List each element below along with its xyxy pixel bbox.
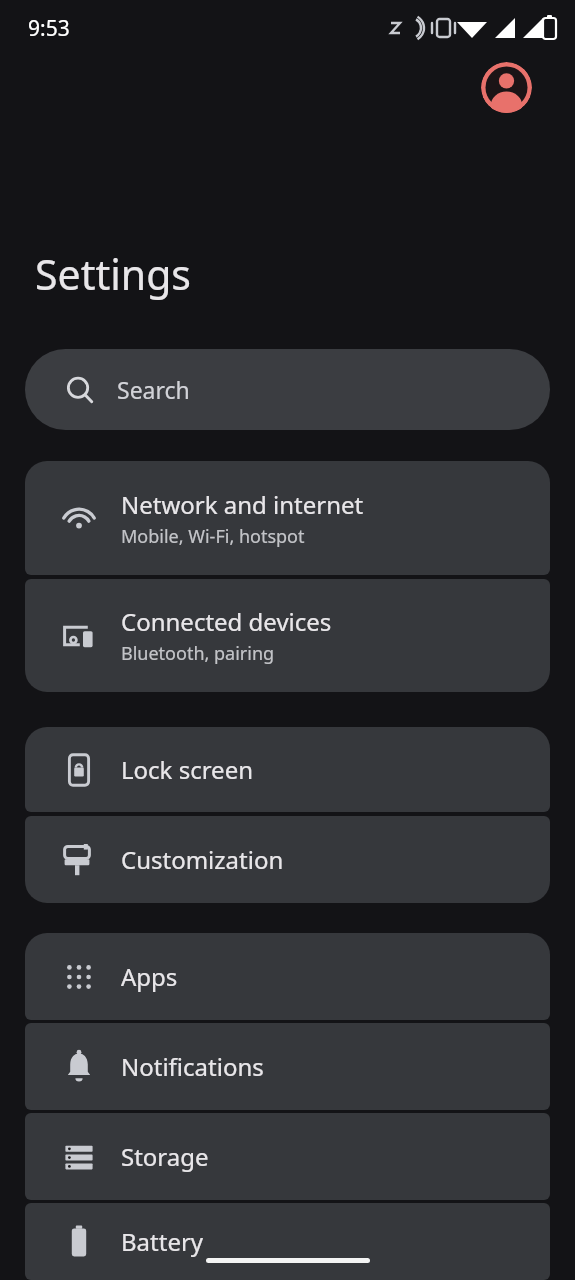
button[interactable]: Apps xyxy=(25,933,550,1020)
button[interactable]: Network and internet xyxy=(25,461,550,575)
staticText: Apps xyxy=(121,960,178,993)
staticText: 9:53 xyxy=(28,14,70,43)
staticText: Search xyxy=(117,374,190,405)
button[interactable]: Notifications xyxy=(25,1023,550,1110)
button[interactable]: Customization xyxy=(25,816,550,903)
button[interactable]: Storage xyxy=(25,1113,550,1200)
staticText: Notifications xyxy=(121,1050,264,1083)
staticText: Settings xyxy=(35,246,192,302)
staticText: Mobile, Wi-Fi, hotspot xyxy=(121,524,305,549)
staticText: Network and internet xyxy=(121,488,364,521)
button[interactable]: Search xyxy=(25,349,550,430)
button[interactable]: Connected devices xyxy=(25,579,550,692)
button[interactable]: Account xyxy=(481,62,532,113)
staticText: Customization xyxy=(121,843,284,876)
staticText: Lock screen xyxy=(121,753,254,786)
button[interactable]: Battery xyxy=(25,1203,550,1280)
button[interactable]: Lock screen xyxy=(25,727,550,812)
staticText: Bluetooth, pairing xyxy=(121,641,275,666)
staticText: Storage xyxy=(121,1140,209,1173)
staticText: Connected devices xyxy=(121,605,332,638)
staticText: Battery xyxy=(121,1225,204,1258)
